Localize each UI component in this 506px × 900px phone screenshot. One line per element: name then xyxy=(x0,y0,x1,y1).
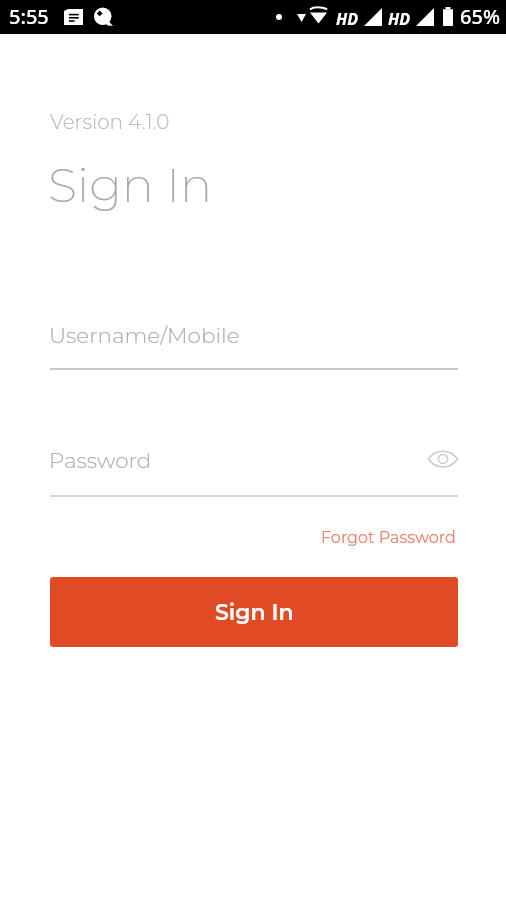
button[interactable]: Sign In xyxy=(50,577,458,647)
button[interactable]: Show password xyxy=(425,441,461,477)
staticText: Username/Mobile xyxy=(49,322,240,348)
staticText: 5:55 xyxy=(9,3,49,30)
button[interactable] xyxy=(50,439,410,497)
button[interactable] xyxy=(50,312,458,370)
staticText: 65% xyxy=(460,3,500,30)
other: Message xyxy=(94,8,113,26)
other: Notification xyxy=(64,9,83,25)
staticText: HD xyxy=(336,8,359,30)
staticText: HD xyxy=(388,8,411,30)
button[interactable]: Forgot Password xyxy=(313,523,463,553)
staticText: Sign In xyxy=(48,156,213,215)
staticText: Sign In xyxy=(215,599,294,626)
staticText: Password xyxy=(49,447,152,473)
staticText: Forgot Password xyxy=(321,528,456,548)
staticText: Version 4.1.0 xyxy=(50,110,170,134)
